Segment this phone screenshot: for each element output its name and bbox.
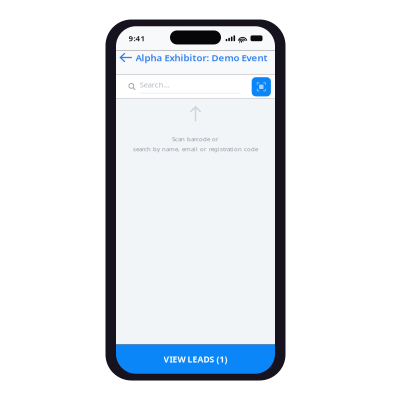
- button[interactable]: Scan barcode: [252, 77, 271, 96]
- staticText: Scan barcode or: [172, 135, 219, 143]
- staticText: search by name, email or registration co…: [133, 145, 258, 153]
- staticText: Alpha Exhibitor: Demo Event: [135, 51, 267, 64]
- staticText: Search...: [140, 79, 170, 90]
- button[interactable]: Alpha Exhibitor: Demo Event: [116, 51, 275, 75]
- button[interactable]: VIEW LEADS (1): [116, 344, 275, 374]
- staticText: 9:41: [128, 33, 145, 44]
- staticText: VIEW LEADS (1): [163, 353, 227, 365]
